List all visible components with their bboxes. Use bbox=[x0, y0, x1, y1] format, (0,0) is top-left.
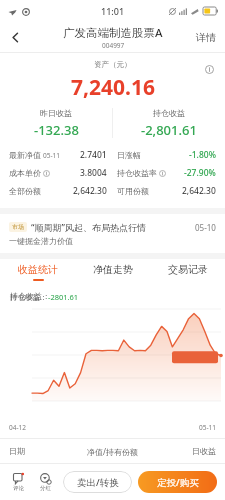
staticText: 一键掘金潜力价值 bbox=[9, 236, 73, 246]
staticText: 持仓收益 bbox=[153, 108, 185, 118]
staticText: 交易记录 bbox=[168, 263, 208, 276]
staticText: 净值走势 bbox=[93, 263, 133, 276]
staticText: 定投/购买 bbox=[157, 476, 199, 489]
staticText: 11:01 bbox=[101, 5, 125, 17]
staticText: 详情 bbox=[196, 31, 216, 44]
staticText: 2.7401 bbox=[80, 149, 107, 161]
staticText: 2,642.30 bbox=[73, 185, 107, 197]
button[interactable]: Info bbox=[201, 61, 217, 77]
staticText: 3.8004 bbox=[80, 167, 107, 179]
button[interactable]: 定投/购买 bbox=[138, 471, 217, 493]
staticText: “顺周期”风起、布局热点行情 bbox=[31, 221, 146, 233]
staticText: 05-11 bbox=[43, 151, 60, 160]
button[interactable]: 市场 bbox=[0, 214, 225, 253]
button[interactable]: 分红 bbox=[33, 464, 57, 500]
staticText: 持仓收益： bbox=[10, 293, 48, 302]
staticText: -27.90% bbox=[184, 167, 216, 179]
staticText: 净值/持有份额 bbox=[70, 446, 155, 457]
staticText: 市场 bbox=[12, 223, 24, 231]
button[interactable]: 详情 bbox=[187, 22, 225, 52]
staticText: 05-10 bbox=[195, 222, 216, 233]
staticText: 广发高端制造股票A bbox=[63, 25, 163, 41]
staticText: 昨日收益 bbox=[40, 108, 72, 118]
staticText: 2,642.30 bbox=[182, 185, 216, 197]
staticText: 日收益 bbox=[155, 446, 216, 456]
button[interactable]: 评论 bbox=[6, 464, 30, 500]
staticText: 可用份额 bbox=[117, 186, 149, 196]
staticText: 评论 bbox=[13, 485, 24, 492]
staticText: 分红 bbox=[40, 485, 51, 492]
staticText: 资产（元） bbox=[94, 60, 132, 69]
staticText: 7,240.16 bbox=[71, 73, 155, 102]
staticText: 持仓收益： bbox=[10, 291, 50, 301]
staticText: -2801.61 bbox=[48, 292, 79, 302]
button[interactable]: Back bbox=[0, 22, 30, 52]
staticText: 最新净值 bbox=[9, 150, 41, 160]
staticText: 日期 bbox=[9, 446, 70, 456]
staticText: 05-11 bbox=[199, 423, 216, 432]
staticText: 收益统计 bbox=[18, 263, 58, 276]
staticText: 004997 bbox=[102, 41, 125, 50]
staticText: 持仓收益率 bbox=[117, 168, 157, 178]
staticText: 日涨幅 bbox=[117, 150, 141, 160]
button[interactable]: 净值走势 bbox=[75, 259, 150, 285]
button[interactable]: 交易记录 bbox=[150, 259, 225, 285]
button[interactable]: 卖出/转换 bbox=[63, 471, 132, 493]
staticText: -2,801.61 bbox=[141, 121, 197, 139]
staticText: -1.80% bbox=[189, 149, 216, 161]
staticText: 全部份额 bbox=[9, 186, 41, 196]
staticText: 04-12 bbox=[9, 423, 26, 432]
button[interactable]: 收益统计 bbox=[0, 259, 75, 285]
staticText: -132.38 bbox=[34, 121, 79, 139]
staticText: 成本单价 bbox=[9, 168, 41, 178]
staticText: 卖出/转换 bbox=[77, 476, 119, 489]
